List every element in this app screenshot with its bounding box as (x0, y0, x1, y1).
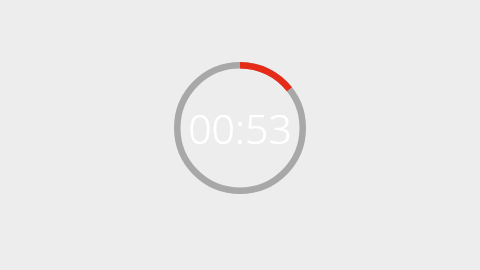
staticText: 00:53 (188, 100, 292, 156)
